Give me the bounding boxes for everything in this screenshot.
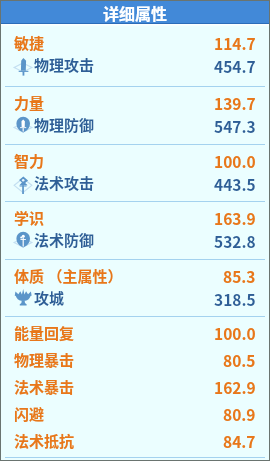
staticText: 84.7 [223, 430, 256, 452]
button[interactable]: 敏捷 [1, 27, 269, 86]
staticText: 163.9 [214, 207, 256, 229]
button[interactable]: 法术暴击 [1, 371, 269, 398]
button[interactable]: 智力 [1, 145, 269, 201]
staticText: 318.5 [214, 288, 256, 310]
button[interactable]: 法术抵抗 [1, 425, 269, 452]
staticText: 114.7 [214, 32, 256, 54]
button[interactable]: 物理暴击 [1, 344, 269, 371]
staticText: 532.8 [214, 230, 256, 252]
staticText: 法术抵抗 [14, 430, 75, 452]
staticText: 100.0 [214, 150, 256, 172]
staticText: 547.3 [214, 115, 256, 137]
staticText: 443.5 [214, 173, 256, 195]
staticText: 80.9 [223, 403, 256, 425]
staticText: 详细属性 [103, 1, 168, 23]
button[interactable]: 学识 [1, 202, 269, 259]
staticText: 敏捷 [14, 32, 45, 54]
staticText: 智力 [14, 150, 45, 172]
staticText: 物理防御 [34, 114, 95, 136]
staticText: 能量回复 [14, 322, 75, 344]
staticText: 物理攻击 [34, 54, 95, 76]
staticText: 139.7 [214, 92, 256, 114]
button[interactable]: 详细属性 [1, 1, 269, 23]
button[interactable]: 能量回复 [1, 317, 269, 344]
staticText: 学识 [14, 207, 45, 229]
staticText: 体质 （主属性） [14, 265, 123, 287]
staticText: 法术攻击 [34, 172, 95, 194]
staticText: 力量 [14, 92, 45, 114]
staticText: 法术防御 [34, 229, 95, 251]
button[interactable]: 体质 （主属性） [1, 260, 269, 316]
staticText: 100.0 [214, 322, 256, 344]
staticText: 162.9 [214, 376, 256, 398]
staticText: 法术暴击 [14, 376, 75, 398]
button[interactable]: 力量 [1, 87, 269, 144]
staticText: 454.7 [214, 55, 256, 77]
button[interactable]: 闪避 [1, 398, 269, 425]
staticText: 物理暴击 [14, 349, 75, 371]
staticText: 85.3 [223, 265, 256, 287]
staticText: 80.5 [223, 349, 256, 371]
staticText: 闪避 [14, 403, 45, 425]
staticText: 攻城 [34, 287, 65, 309]
